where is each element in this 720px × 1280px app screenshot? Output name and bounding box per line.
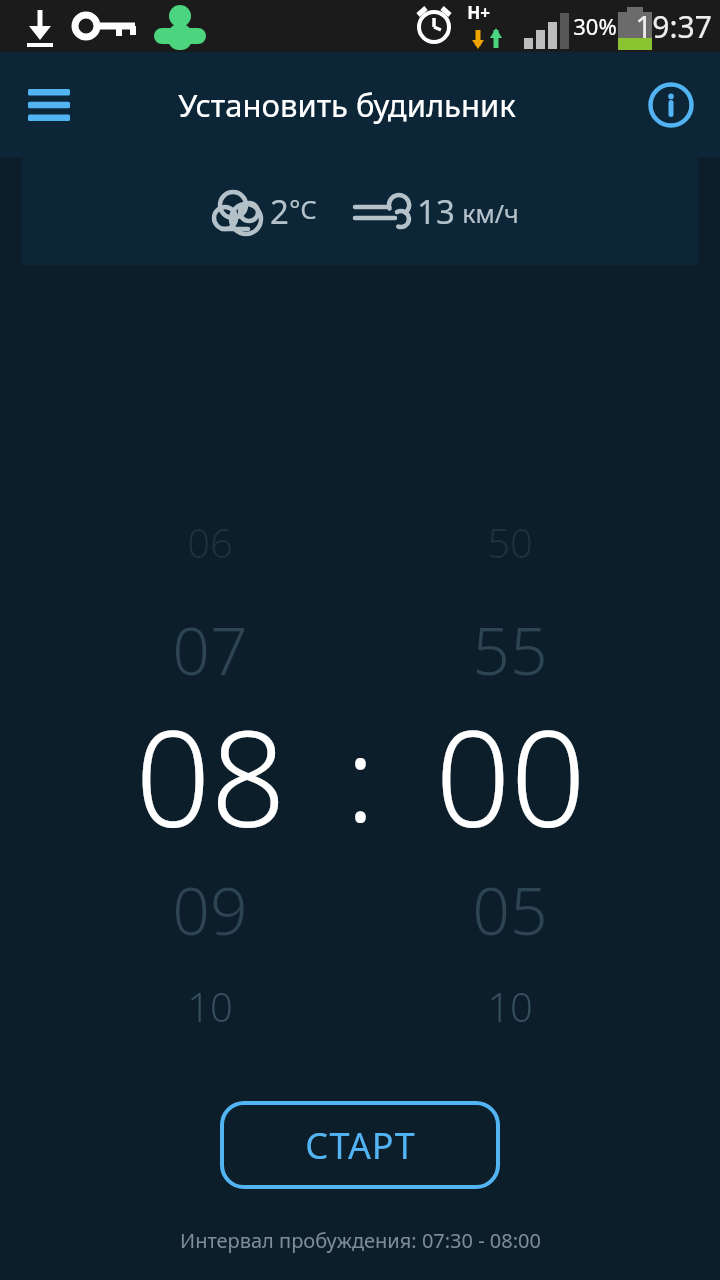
button[interactable]: 2: [22, 157, 698, 265]
button[interactable]: 55: [410, 604, 610, 684]
staticText: Интервал пробуждения: 07:30 - 08:00: [180, 1227, 541, 1254]
staticText: 13: [417, 189, 455, 234]
staticText: :: [346, 696, 375, 857]
staticText: км/ч: [462, 196, 519, 230]
button[interactable]: Info: [640, 74, 702, 136]
staticText: 30%: [573, 11, 617, 41]
staticText: 2: [270, 189, 289, 234]
button[interactable]: 05: [410, 864, 610, 944]
staticText: 50: [487, 515, 533, 569]
staticText: 05: [472, 864, 548, 944]
staticText: 10: [187, 979, 233, 1033]
staticText: H+: [467, 1, 490, 24]
staticText: 55: [472, 604, 548, 684]
staticText: 07: [172, 604, 248, 684]
staticText: °C: [289, 191, 317, 226]
button[interactable]: 09: [110, 864, 310, 944]
button[interactable]: 08: [90, 686, 330, 866]
button[interactable]: 07: [110, 604, 310, 684]
staticText: 00: [435, 686, 586, 866]
staticText: 10: [487, 979, 533, 1033]
button[interactable]: 10: [110, 978, 310, 1034]
staticText: 08: [135, 686, 286, 866]
staticText: 19:37: [635, 6, 712, 47]
button[interactable]: 00: [390, 686, 630, 866]
button[interactable]: 10: [410, 978, 610, 1034]
staticText: 09: [172, 864, 248, 944]
staticText: 06: [187, 515, 233, 569]
button[interactable]: Menu: [18, 74, 80, 136]
staticText: СТАРТ: [305, 1121, 416, 1170]
staticText: Установить будильник: [178, 84, 516, 126]
button[interactable]: СТАРТ: [220, 1101, 500, 1189]
